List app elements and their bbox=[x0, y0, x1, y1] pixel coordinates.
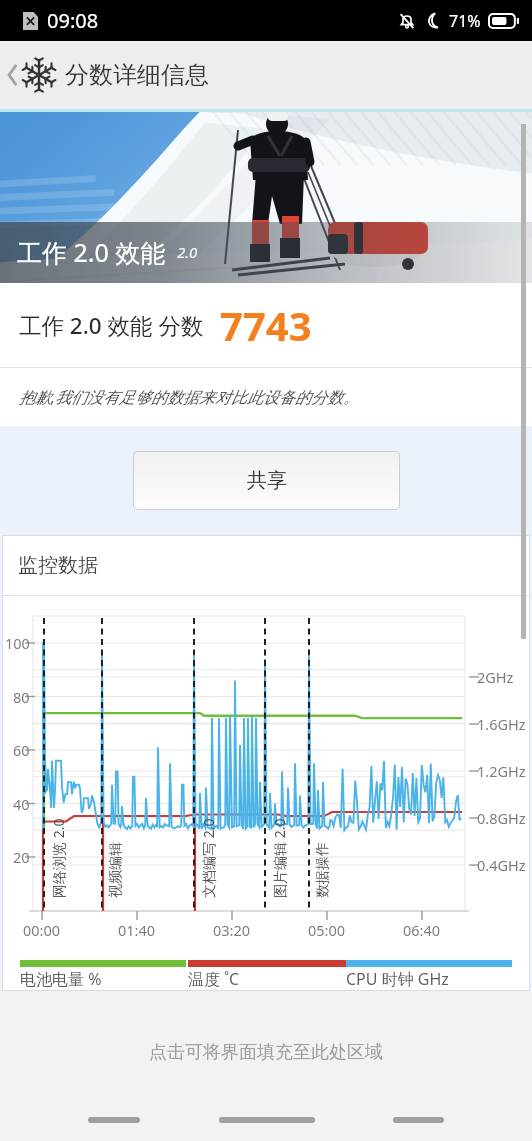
staticText: 工作 2.0 效能 bbox=[17, 235, 166, 269]
staticText: 2GHz bbox=[477, 667, 514, 687]
staticText: 60 bbox=[13, 740, 30, 760]
staticText: CPU 时钟 GHz bbox=[346, 968, 449, 990]
button[interactable]: Back bbox=[2, 52, 22, 98]
staticText: 共享 bbox=[247, 468, 287, 493]
staticText: 06:40 bbox=[403, 920, 441, 940]
staticText: 文档编写 2.0 bbox=[199, 818, 218, 898]
staticText: 7743 bbox=[220, 298, 312, 352]
staticText: 2.0 bbox=[177, 242, 198, 262]
staticText: 抱歉,我们没有足够的数据来对比此设备的分数。 bbox=[19, 386, 360, 408]
staticText: 0.8GHz bbox=[477, 808, 526, 828]
staticText: 点击可将界面填充至此处区域 bbox=[149, 1041, 383, 1064]
staticText: 00:00 bbox=[23, 920, 61, 940]
staticText: 视频编辑 bbox=[107, 842, 125, 898]
staticText: 80 bbox=[13, 687, 30, 707]
staticText: 温度 ˚C bbox=[188, 968, 240, 990]
button[interactable]: 共享 bbox=[133, 451, 400, 510]
staticText: 1.6GHz bbox=[477, 714, 526, 734]
staticText: 分数详细信息 bbox=[65, 60, 209, 90]
staticText: 03:20 bbox=[213, 920, 251, 940]
staticText: 01:40 bbox=[118, 920, 156, 940]
staticText: 20 bbox=[13, 847, 30, 867]
staticText: 100 bbox=[5, 633, 30, 653]
button[interactable]: Back bbox=[88, 1117, 140, 1123]
staticText: 图片编辑 2.0 bbox=[270, 818, 289, 898]
staticText: 网络浏览 2.0 bbox=[49, 818, 68, 898]
staticText: 71% bbox=[449, 10, 481, 32]
staticText: 数据操作 bbox=[314, 842, 332, 898]
button[interactable]: Home bbox=[219, 1117, 315, 1123]
staticText: 40 bbox=[13, 794, 30, 814]
staticText: 监控数据 bbox=[18, 553, 98, 578]
staticText: 1.2GHz bbox=[477, 761, 526, 781]
staticText: 0.4GHz bbox=[477, 855, 526, 875]
staticText: 09:08 bbox=[47, 7, 99, 34]
staticText: 工作 2.0 效能 分数 bbox=[19, 310, 204, 341]
staticText: 05:00 bbox=[308, 920, 346, 940]
button[interactable]: Recents bbox=[393, 1117, 444, 1123]
staticText: 电池电量 % bbox=[20, 968, 102, 990]
